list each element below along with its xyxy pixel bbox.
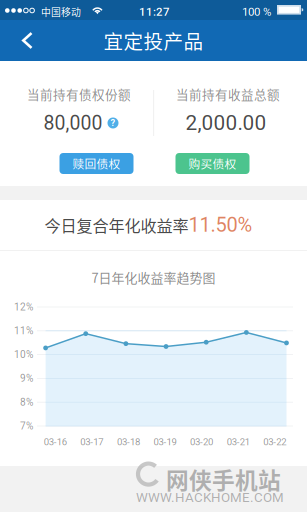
- staticText: 11.50%: [188, 213, 252, 237]
- staticText: 100 %: [242, 5, 271, 18]
- staticText: 网侠手机站: [166, 463, 281, 495]
- staticText: 7%: [20, 420, 33, 432]
- staticText: 9%: [20, 372, 33, 384]
- staticText: ?: [110, 117, 115, 128]
- button[interactable]: Back: [0, 20, 44, 61]
- staticText: 当前持有收益总额: [176, 85, 280, 103]
- staticText: 购买债权: [188, 155, 236, 172]
- staticText: 03-16: [44, 436, 67, 448]
- button[interactable]: 赎回债权: [59, 153, 133, 174]
- staticText: 今日复合年化收益率: [44, 213, 188, 237]
- staticText: 中国移动: [41, 4, 81, 19]
- staticText: 2,000.00: [185, 111, 266, 135]
- staticText: 03-17: [80, 436, 103, 448]
- staticText: 11:27: [139, 5, 170, 18]
- staticText: 12%: [14, 301, 33, 313]
- staticText: 8%: [20, 396, 33, 408]
- button[interactable]: What is this: [107, 117, 118, 128]
- staticText: 11%: [14, 325, 33, 337]
- staticText: 10%: [14, 349, 33, 361]
- staticText: 03-20: [190, 436, 213, 448]
- staticText: 80,000: [43, 112, 102, 134]
- staticText: WWW.HACKHOME.COM: [136, 490, 284, 505]
- staticText: 03-21: [227, 436, 250, 448]
- button[interactable]: 购买债权: [175, 153, 249, 174]
- staticText: 03-19: [153, 436, 176, 448]
- staticText: 7日年化收益率趋势图: [91, 268, 215, 286]
- staticText: 宜定投产品: [103, 26, 203, 55]
- staticText: 当前持有债权份额: [27, 85, 131, 103]
- staticText: 03-18: [117, 436, 140, 448]
- staticText: 赎回债权: [72, 155, 120, 172]
- staticText: 03-22: [263, 436, 286, 448]
